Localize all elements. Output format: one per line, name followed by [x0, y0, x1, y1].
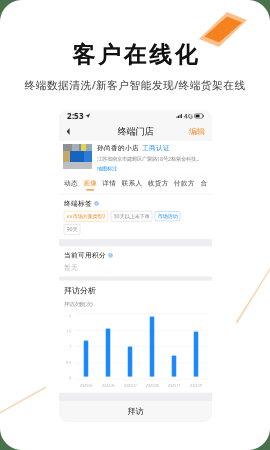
button[interactable]: 30天以上未下单 — [111, 211, 152, 221]
staticText: 市场活动 — [157, 213, 177, 219]
staticText: 动态 — [64, 179, 78, 187]
staticText: 2020-06 — [101, 383, 114, 388]
staticText: 暂无 — [64, 263, 78, 272]
staticText: 编辑 — [189, 127, 205, 136]
button[interactable]: 市场活动 — [155, 211, 180, 221]
staticText: 当前可用积分 — [64, 251, 106, 259]
staticText: i — [96, 201, 97, 206]
staticText: 拜访分析 — [64, 286, 96, 295]
staticText: 终端数据清洗/新客户智能发现/终端货架在线 — [24, 78, 245, 92]
button[interactable]: 合 — [200, 176, 208, 194]
staticText: 4G — [184, 112, 193, 120]
button[interactable]: 90天 — [64, 224, 80, 234]
staticText: 江苏省南京市建邺区广聚路18号2栋紫金科技创… — [97, 155, 202, 162]
staticText: 0 — [69, 375, 71, 381]
staticText: 1.5 — [66, 328, 71, 333]
staticText: 画像 — [83, 179, 97, 187]
button[interactable]: Back — [62, 124, 75, 139]
button[interactable]: 拜访 — [59, 401, 212, 422]
staticText: 工商认证 — [142, 144, 170, 152]
button[interactable]: xx市场方案类型2 — [64, 211, 108, 221]
staticText: 2:53 — [67, 111, 84, 121]
staticText: 2020-05 — [79, 383, 92, 388]
staticText: 90天 — [66, 226, 77, 233]
staticText: 合 — [200, 179, 207, 187]
staticText: 终端门店 — [117, 126, 153, 137]
staticText: 客户在线化 — [72, 41, 198, 69]
button[interactable]: 动态 — [64, 176, 78, 194]
staticText: 2 — [69, 313, 71, 318]
staticText: 终端标签 — [64, 199, 92, 208]
staticText: 地图标注 — [97, 165, 117, 172]
staticText: 1 — [69, 344, 71, 349]
staticText: 拜访 — [127, 406, 143, 416]
staticText: i — [110, 253, 111, 258]
button[interactable]: 联系人 — [121, 176, 142, 194]
staticText: 详情 — [102, 179, 116, 187]
staticText: 2020-11 — [167, 383, 180, 388]
button[interactable]: 详情 — [102, 176, 116, 194]
staticText: 30天以上未下单 — [113, 213, 149, 220]
staticText: 0.5 — [66, 360, 71, 365]
staticText: 2021-01 — [189, 383, 202, 388]
button[interactable]: 画像 — [83, 176, 97, 194]
staticText: 2020-08 — [145, 383, 158, 388]
staticText: xx市场方案类型2 — [66, 213, 105, 220]
staticText: 收货方 — [148, 179, 169, 187]
staticText: 孙尚香的小店 — [97, 144, 139, 152]
button[interactable]: 地图标注 — [97, 165, 117, 172]
button[interactable]: 编辑 — [185, 123, 209, 140]
staticText: 联系人 — [121, 179, 142, 187]
button[interactable]: 收货方 — [148, 176, 169, 194]
button[interactable]: 付款方 — [174, 176, 195, 194]
staticText: 2020-07 — [123, 383, 136, 388]
staticText: 付款方 — [174, 179, 195, 187]
staticText: 拜访次数(次) — [64, 300, 93, 308]
